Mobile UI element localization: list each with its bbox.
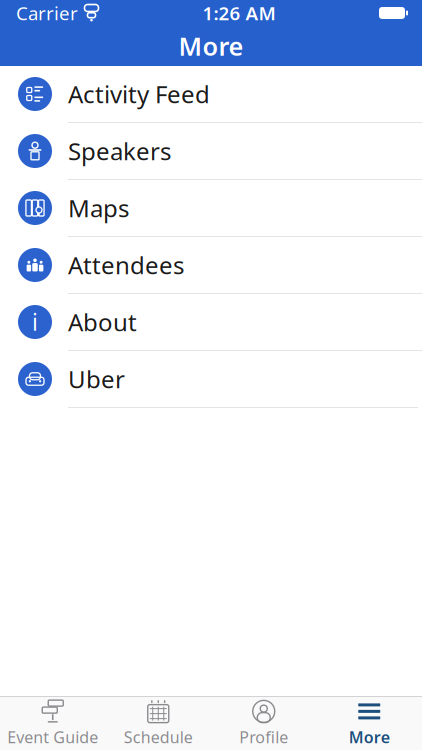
staticText: About bbox=[68, 306, 137, 338]
button[interactable]: Profile bbox=[211, 697, 316, 750]
staticText: Event Guide bbox=[7, 726, 98, 748]
staticText: Speakers bbox=[68, 135, 171, 167]
staticText: Profile bbox=[239, 726, 288, 748]
staticText: Maps bbox=[68, 192, 129, 224]
staticText: Attendees bbox=[68, 249, 184, 281]
button[interactable]: Maps bbox=[0, 180, 422, 237]
staticText: More bbox=[178, 29, 243, 63]
staticText: More bbox=[349, 726, 390, 748]
button[interactable]: Speakers bbox=[0, 123, 422, 180]
staticText: i bbox=[32, 307, 38, 337]
button[interactable]: Event Guide bbox=[0, 697, 105, 750]
button[interactable]: More bbox=[316, 697, 422, 750]
button[interactable]: Activity Feed bbox=[0, 66, 422, 123]
button[interactable]: Attendees bbox=[0, 237, 422, 294]
staticText: Carrier bbox=[16, 1, 78, 25]
button[interactable]: Schedule bbox=[105, 697, 211, 750]
button[interactable]: i bbox=[0, 294, 422, 351]
staticText: Uber bbox=[68, 363, 125, 395]
staticText: 1:26 AM bbox=[202, 1, 275, 25]
button[interactable]: Uber bbox=[0, 351, 422, 408]
staticText: Schedule bbox=[124, 726, 193, 748]
staticText: Activity Feed bbox=[68, 78, 210, 110]
